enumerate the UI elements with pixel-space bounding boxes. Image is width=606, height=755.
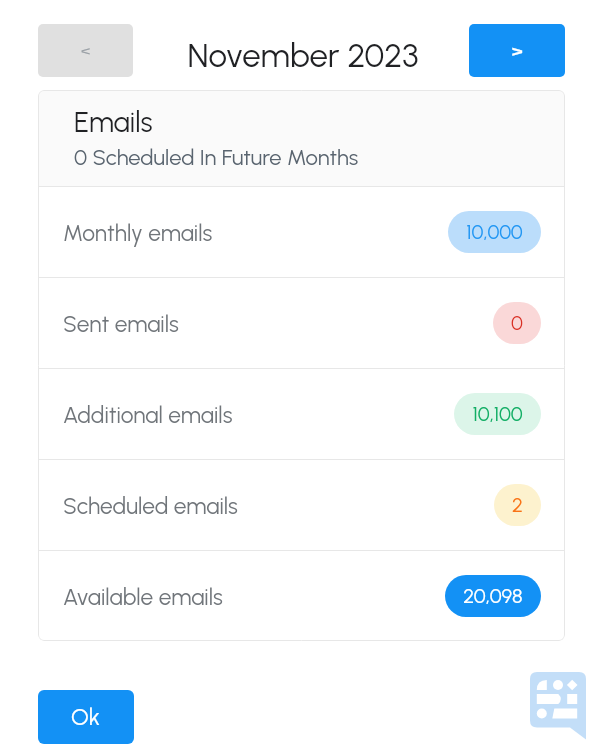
staticText: Ok: [71, 703, 101, 731]
button[interactable]: Available emails: [38, 551, 565, 641]
staticText: <: [81, 41, 91, 60]
staticText: Available emails: [63, 583, 223, 610]
staticText: Scheduled emails: [63, 492, 238, 519]
button[interactable]: Ok: [38, 690, 134, 744]
staticText: 0 Scheduled In Future Months: [74, 144, 359, 170]
staticText: >: [512, 40, 523, 62]
button[interactable]: Scheduled emails: [38, 460, 565, 550]
button[interactable]: Monthly emails: [38, 187, 565, 277]
staticText: November 2023: [0, 36, 606, 76]
staticText: Additional emails: [63, 401, 233, 428]
button[interactable]: Additional emails: [38, 369, 565, 459]
staticText: 10,100: [472, 402, 523, 426]
staticText: Monthly emails: [63, 219, 213, 246]
staticText: 2: [512, 493, 523, 517]
button[interactable]: Previous month: [38, 24, 133, 77]
button[interactable]: Next month: [469, 24, 565, 77]
button[interactable]: Sent emails: [38, 278, 565, 368]
staticText: 10,000: [466, 220, 523, 244]
staticText: Sent emails: [63, 310, 179, 337]
button[interactable]: Feedback: [530, 672, 586, 740]
staticText: 0: [511, 311, 523, 335]
staticText: 20,098: [463, 584, 523, 608]
staticText: Emails: [74, 105, 153, 139]
